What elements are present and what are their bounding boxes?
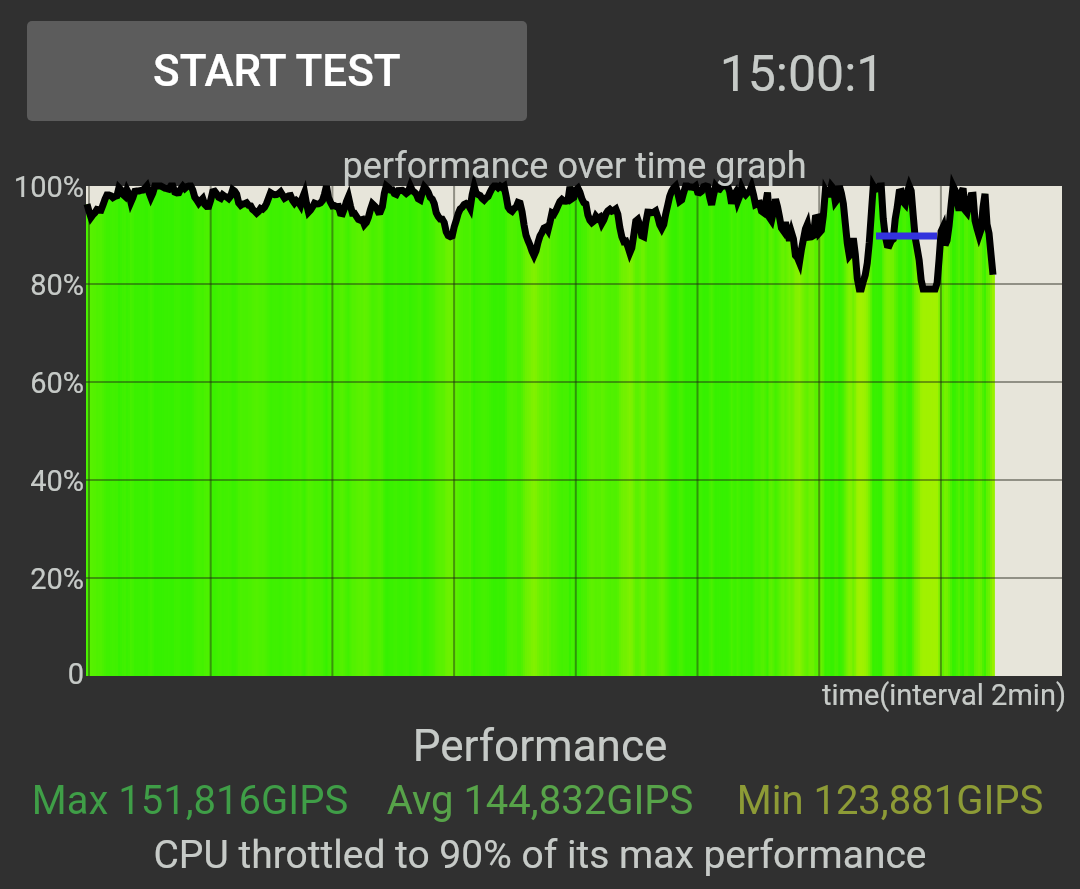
staticText: Max 151,816GIPS (15, 777, 365, 824)
staticText: Performance (0, 720, 1080, 772)
staticText: performance over time graph (87, 145, 1062, 187)
staticText: Avg 144,832GIPS (365, 777, 715, 824)
staticText: 100% (0, 170, 84, 204)
other: Performance over time graph (0, 0, 1080, 889)
button[interactable]: START TEST (27, 21, 527, 121)
staticText: time(interval 2min) (0, 678, 1066, 712)
staticText: START TEST (153, 45, 401, 97)
staticText: CPU throttled to 90% of its max performa… (0, 832, 1080, 878)
staticText: 40% (0, 464, 84, 498)
staticText: 20% (0, 562, 84, 596)
staticText: Min 123,881GIPS (715, 777, 1065, 824)
staticText: 0 (0, 657, 84, 691)
staticText: 80% (0, 268, 84, 302)
staticText: 15:00:1 (532, 45, 1072, 104)
staticText: 60% (0, 366, 84, 400)
